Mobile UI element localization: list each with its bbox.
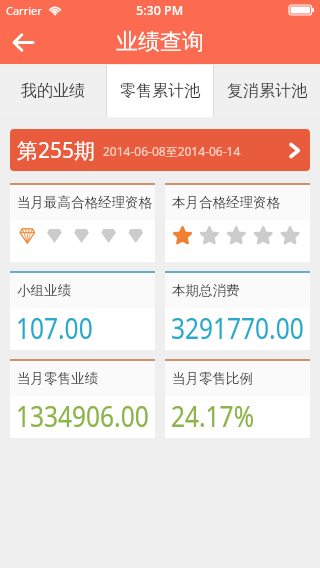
staticText: 24.17% xyxy=(171,396,255,435)
staticText: 小组业绩 xyxy=(17,282,71,299)
staticText: 复消累计池 xyxy=(227,81,307,101)
staticText: 我的业绩 xyxy=(21,81,85,101)
button[interactable]: 第255期 xyxy=(10,129,310,171)
button[interactable]: 本期总消费 xyxy=(165,271,310,350)
staticText: 当月零售业绩 xyxy=(17,370,98,387)
button[interactable]: 当月零售业绩 xyxy=(10,359,155,438)
staticText: 1334906.00 xyxy=(16,396,149,435)
staticText: 本月合格经理资格 xyxy=(172,194,280,211)
staticText: 零售累计池 xyxy=(120,81,200,101)
button[interactable]: 当月零售比例 xyxy=(165,359,310,438)
staticText: 当月零售比例 xyxy=(172,370,253,387)
staticText: 107.00 xyxy=(16,308,93,347)
other: Next period xyxy=(289,143,300,158)
button[interactable]: Back xyxy=(3,22,43,62)
staticText: 当月最高合格经理资格 xyxy=(17,194,152,211)
staticText: Carrier xyxy=(6,3,42,18)
staticText: 本期总消费 xyxy=(172,282,240,299)
button[interactable]: 零售累计池 xyxy=(107,65,213,117)
button[interactable]: 本月合格经理资格 xyxy=(165,183,310,262)
staticText: 业绩查询 xyxy=(116,28,204,56)
button[interactable]: 当月最高合格经理资格 xyxy=(10,183,155,262)
staticText: 2014-06-08至2014-06-14 xyxy=(103,143,241,159)
button[interactable]: 我的业绩 xyxy=(0,65,106,117)
button[interactable]: 小组业绩 xyxy=(10,271,155,350)
button[interactable]: 复消累计池 xyxy=(214,65,320,117)
staticText: 5:30 PM xyxy=(136,2,184,19)
staticText: 第255期 xyxy=(17,136,96,165)
staticText: 3291770.00 xyxy=(171,308,304,347)
